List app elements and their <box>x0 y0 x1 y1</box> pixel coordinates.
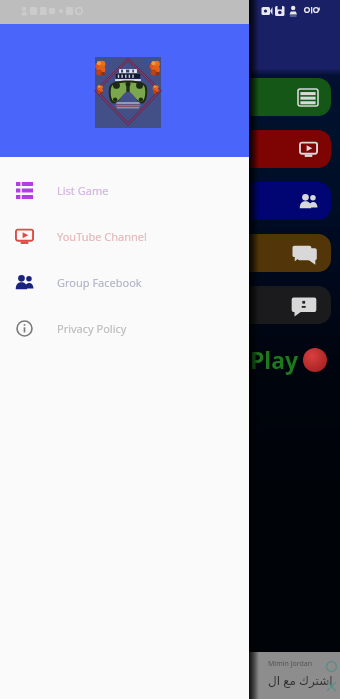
button[interactable]: Privacy Policy <box>0 305 249 351</box>
button[interactable]: Menu item <box>20 182 331 220</box>
staticText: Privacy Policy <box>57 321 127 336</box>
button[interactable]: List Game <box>0 167 249 213</box>
staticText: Mimin Jordan <box>268 659 313 669</box>
staticText: Group Facebook <box>57 275 142 290</box>
button[interactable]: Menu item <box>20 130 331 168</box>
button[interactable]: Menu item <box>20 234 331 272</box>
staticText: YouTube Channel <box>57 229 147 244</box>
staticText: اشترك مع ال <box>268 672 333 688</box>
button[interactable]: YouTube Channel <box>0 213 249 259</box>
button[interactable]: Group Facebook <box>0 259 249 305</box>
button[interactable]: Menu item <box>20 286 331 324</box>
staticText: List Game <box>57 183 109 198</box>
button[interactable]: Menu item <box>20 78 331 116</box>
staticText: Play <box>250 344 299 375</box>
